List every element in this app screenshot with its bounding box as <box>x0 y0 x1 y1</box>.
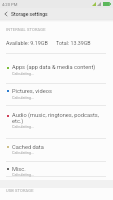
staticText: USB STORAGE <box>6 188 34 193</box>
staticText: Calculating... <box>12 150 34 154</box>
staticText: Storage settings <box>11 11 48 17</box>
button[interactable]: Audio (music, ringtones, podcasts, etc.) <box>0 106 113 138</box>
button[interactable]: Pictures, videos <box>0 84 113 105</box>
staticText: Calculating... <box>12 124 34 128</box>
staticText: Audio (music, ringtones, podcasts, etc.) <box>12 112 103 124</box>
button[interactable]: Navigate up <box>0 8 11 19</box>
staticText: Calculating... <box>12 172 34 176</box>
staticText: Calculating... <box>12 95 34 99</box>
staticText: Cached data <box>12 144 103 151</box>
button[interactable]: Cached data <box>0 139 113 162</box>
button[interactable]: Misc. <box>0 162 113 176</box>
staticText: 4:20 PM <box>2 2 18 7</box>
button[interactable]: Apps (app data & media content) <box>0 54 113 84</box>
staticText: Apps (app data & media content) <box>12 64 103 71</box>
staticText: Pictures, videos <box>12 88 103 95</box>
staticText: INTERNAL STORAGE <box>6 27 46 32</box>
staticText: Misc. <box>12 166 103 173</box>
staticText: Available: 9.19GB <box>6 40 48 46</box>
staticText: Total: 13.39GB <box>56 40 91 46</box>
staticText: Calculating... <box>12 71 34 75</box>
